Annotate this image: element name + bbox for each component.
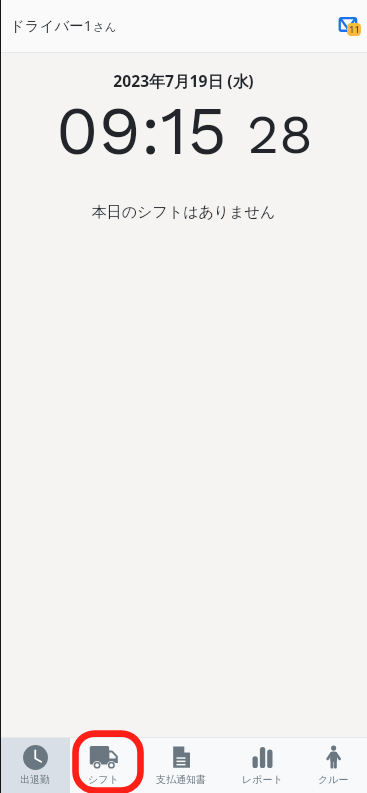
staticText: 支払通知書 bbox=[156, 773, 206, 786]
staticText: 28 bbox=[247, 102, 313, 167]
staticText: 2023年7月19日 (水) bbox=[0, 70, 367, 91]
staticText: 11 bbox=[349, 23, 360, 36]
staticText: クルー bbox=[318, 773, 349, 786]
button[interactable]: シフト bbox=[70, 738, 137, 793]
staticText: 09:15 bbox=[56, 91, 227, 171]
staticText: レポート bbox=[242, 773, 283, 786]
staticText: 本日のシフトはありません bbox=[0, 203, 367, 222]
staticText: ドライバー1 bbox=[10, 15, 93, 35]
button[interactable]: クルー bbox=[299, 738, 367, 793]
staticText: さん bbox=[93, 20, 117, 34]
staticText: シフト bbox=[88, 773, 119, 786]
button[interactable]: 支払通知書 bbox=[137, 738, 225, 793]
staticText: 出退勤 bbox=[20, 773, 50, 786]
button[interactable]: レポート bbox=[225, 738, 299, 793]
button[interactable]: 出退勤 bbox=[0, 738, 70, 793]
button[interactable]: Messages bbox=[333, 10, 367, 44]
